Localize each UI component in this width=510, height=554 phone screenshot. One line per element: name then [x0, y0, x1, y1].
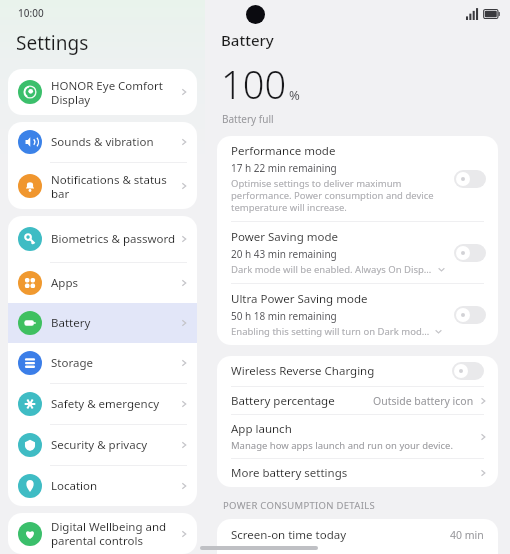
staticText: Storage: [51, 355, 179, 371]
staticText: Outside battery icon: [373, 394, 474, 408]
button[interactable]: Digital Wellbeing and parental controls: [8, 513, 197, 554]
button[interactable]: Ultra Power Saving mode: [217, 284, 498, 345]
button[interactable]: Toggle: [454, 170, 486, 188]
staticText: Settings: [16, 30, 89, 56]
staticText: Manage how apps launch and run on your d…: [231, 439, 453, 452]
staticText: App launch: [231, 421, 292, 437]
other: Open: [478, 396, 488, 406]
staticText: Battery full: [222, 112, 274, 126]
staticText: Battery: [51, 315, 179, 331]
staticText: Ultra Power Saving mode: [231, 291, 368, 307]
button[interactable]: Performance mode: [217, 136, 498, 221]
staticText: 20 h 43 min remaining: [231, 247, 337, 261]
other: Open: [478, 468, 488, 478]
button[interactable]: Toggle: [454, 244, 486, 262]
staticText: 40 min: [450, 528, 484, 542]
button[interactable]: Battery percentage: [217, 387, 498, 414]
staticText: %: [289, 86, 300, 104]
staticText: Biometrics & password: [51, 231, 179, 247]
staticText: 50 h 18 min remaining: [231, 309, 337, 323]
staticText: POWER CONSUMPTION DETAILS: [223, 499, 375, 512]
staticText: Enabling this setting will turn on Dark …: [231, 325, 430, 338]
button[interactable]: Screen-on time today: [217, 519, 498, 554]
staticText: 100: [221, 58, 287, 110]
staticText: Notifications & status bar: [51, 172, 179, 201]
button[interactable]: App launch: [217, 415, 498, 458]
button[interactable]: Wireless Reverse Charging: [217, 356, 498, 386]
button[interactable]: More battery settings: [217, 459, 498, 487]
staticText: Optimise settings to deliver maximum per…: [231, 177, 446, 214]
button[interactable]: Biometrics & password: [8, 216, 197, 262]
staticText: Apps: [51, 275, 179, 291]
button[interactable]: Toggle: [454, 306, 486, 324]
staticText: Battery percentage: [231, 393, 373, 409]
staticText: Wireless Reverse Charging: [231, 363, 452, 379]
staticText: Battery: [221, 30, 274, 50]
button[interactable]: Toggle: [452, 362, 484, 380]
staticText: Digital Wellbeing and parental controls: [51, 519, 179, 548]
staticText: Location: [51, 478, 179, 494]
staticText: Performance mode: [231, 143, 336, 159]
staticText: Safety & emergency: [51, 396, 179, 412]
staticText: More battery settings: [231, 465, 478, 481]
button[interactable]: Apps: [8, 263, 197, 303]
button[interactable]: Notifications & status bar: [8, 163, 197, 209]
button[interactable]: Power Saving mode: [217, 222, 498, 283]
button[interactable]: Storage: [8, 343, 197, 383]
button[interactable]: Location: [8, 466, 197, 506]
button[interactable]: HONOR Eye Comfort Display: [8, 69, 197, 115]
button[interactable]: Battery: [8, 303, 197, 343]
button[interactable]: Sounds & vibration: [8, 122, 197, 162]
staticText: Power Saving mode: [231, 229, 338, 245]
button[interactable]: Security & privacy: [8, 425, 197, 465]
staticText: Sounds & vibration: [51, 134, 179, 150]
other: Open: [478, 432, 488, 442]
staticText: Security & privacy: [51, 437, 179, 453]
staticText: HONOR Eye Comfort Display: [51, 78, 179, 107]
staticText: 10:00: [18, 6, 44, 20]
button[interactable]: Safety & emergency: [8, 384, 197, 424]
staticText: 17 h 22 min remaining: [231, 161, 337, 175]
staticText: Dark mode will be enabled. Always On Dis…: [231, 263, 433, 276]
staticText: Screen-on time today: [231, 527, 450, 543]
